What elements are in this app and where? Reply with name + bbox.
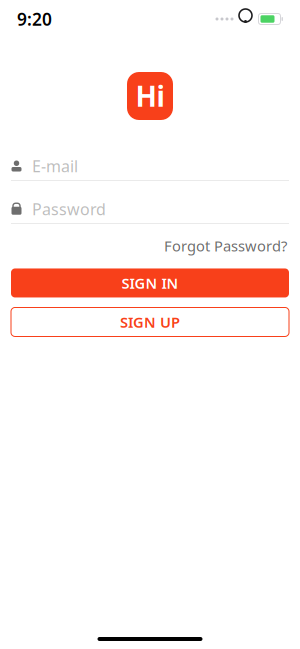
staticText: Forgot Password?	[164, 236, 287, 255]
button[interactable]: SIGN IN	[11, 268, 289, 297]
staticText: 9:20	[17, 7, 52, 30]
staticText: SIGN IN	[121, 273, 178, 293]
staticText: Hi	[135, 77, 164, 115]
button[interactable]: Forgot Password?	[162, 232, 289, 259]
button[interactable]: SIGN UP	[11, 307, 289, 336]
staticText: SIGN UP	[120, 312, 180, 332]
staticText: Password	[32, 198, 106, 220]
staticText: E-mail	[32, 155, 78, 177]
